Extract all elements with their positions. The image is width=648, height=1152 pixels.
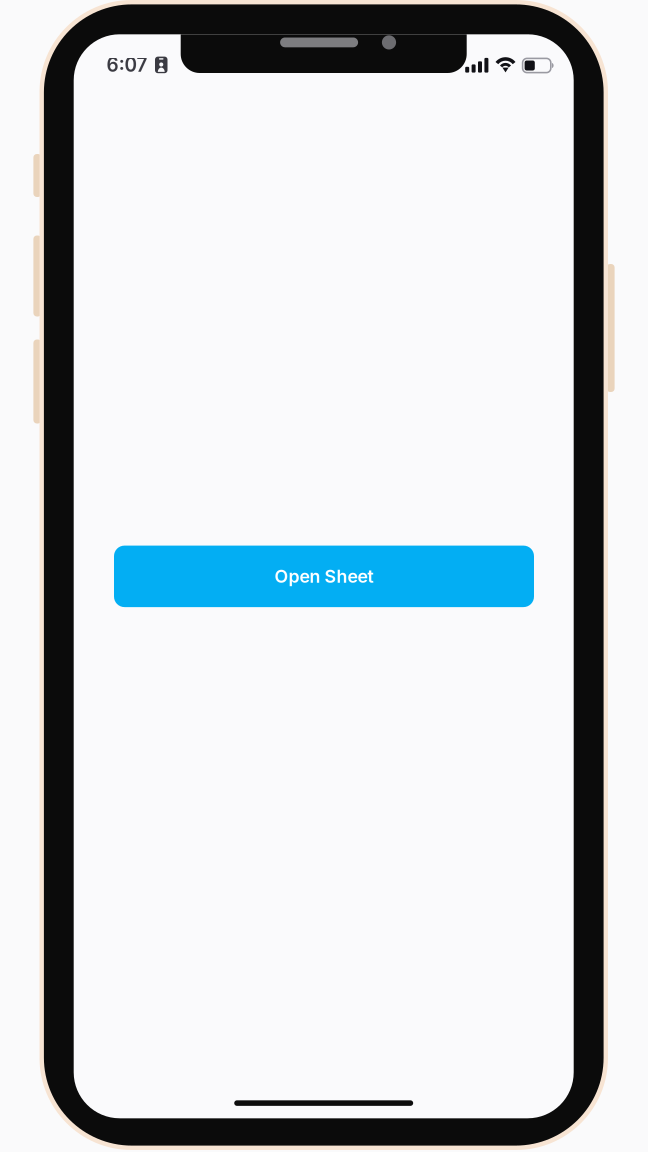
staticText: 6:07: [106, 53, 147, 76]
button[interactable]: Open Sheet: [114, 546, 534, 607]
staticText: Open Sheet: [274, 566, 373, 587]
